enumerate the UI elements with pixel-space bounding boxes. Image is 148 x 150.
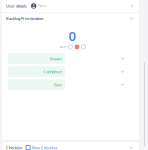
button[interactable]: Impact: [2, 53, 139, 64]
button[interactable]: User details: [2, 0, 139, 12]
staticText: Score: [59, 45, 66, 49]
staticText: Impact: [50, 56, 62, 61]
staticText: 0: [68, 27, 76, 45]
staticText: Ease: [54, 82, 62, 87]
button[interactable]: Confidence: [2, 66, 139, 77]
staticText: User details: [6, 3, 27, 9]
staticText: New Checklist: [32, 145, 57, 150]
button[interactable]: Ease: [2, 79, 139, 90]
staticText: Checklist: [6, 145, 22, 150]
staticText: Backlog Prioritization: [6, 16, 43, 21]
staticText: Open: [38, 4, 46, 8]
button[interactable]: New Checklist: [26, 145, 57, 150]
button[interactable]: Backlog Prioritization: [2, 13, 139, 24]
staticText: Confidence: [43, 69, 62, 74]
